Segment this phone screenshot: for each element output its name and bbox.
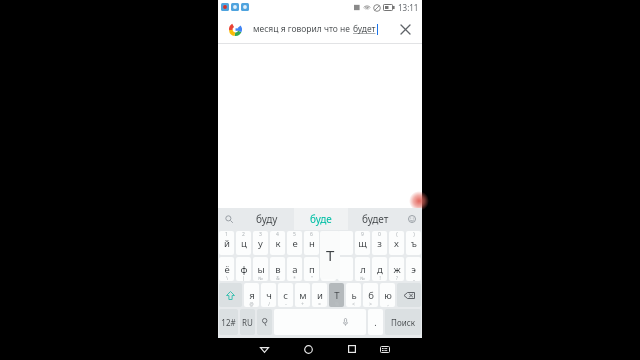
button[interactable]: п [304, 257, 319, 281]
button[interactable]: Т [329, 283, 344, 307]
staticText: ю [384, 289, 392, 302]
staticText: ) [413, 231, 415, 238]
button[interactable]: Space [274, 309, 366, 335]
staticText: RU [242, 317, 253, 328]
button[interactable]: Back [251, 338, 277, 360]
button[interactable]: Hide keyboard [372, 338, 398, 360]
staticText: | [242, 275, 245, 281]
staticText: в [275, 263, 281, 276]
staticText: 12# [221, 317, 236, 328]
staticText: у [258, 237, 263, 250]
button[interactable]: ц [236, 231, 251, 255]
staticText: д [377, 263, 383, 276]
staticText: , [387, 301, 389, 307]
button[interactable]: ь [346, 283, 361, 307]
button[interactable]: Home [295, 338, 321, 360]
staticText: ё [224, 263, 230, 276]
button[interactable] [321, 257, 336, 281]
staticText: _ [413, 275, 415, 281]
staticText: з [377, 237, 382, 250]
staticText: е [292, 237, 298, 250]
button[interactable]: л [355, 257, 370, 281]
staticText: \ [226, 275, 228, 281]
button[interactable]: й [219, 231, 234, 255]
button[interactable]: ы [253, 257, 268, 281]
staticText: 6 [310, 231, 313, 238]
staticText: < [352, 301, 355, 307]
staticText: ч [266, 289, 272, 302]
button[interactable]: ж [389, 257, 404, 281]
button[interactable]: Emoji [402, 208, 422, 230]
button[interactable]: . [368, 309, 383, 335]
staticText: Т [326, 245, 335, 265]
button[interactable]: буде [294, 208, 348, 230]
button[interactable]: б [363, 283, 378, 307]
staticText: > [369, 301, 372, 307]
button[interactable]: Clear query [395, 19, 415, 39]
staticText: 0 [378, 231, 381, 238]
staticText: ? [396, 275, 398, 281]
staticText: б [368, 289, 374, 302]
button[interactable]: с [278, 283, 293, 307]
button[interactable]: Keyboard settings [257, 309, 272, 335]
staticText: месяц я говорил что не [253, 23, 353, 35]
staticText: м [299, 289, 307, 302]
staticText: Поиск [391, 317, 415, 328]
staticText: / [268, 301, 270, 307]
button[interactable]: к [270, 231, 285, 255]
button[interactable]: и [312, 283, 327, 307]
button[interactable]: д [372, 257, 387, 281]
button[interactable]: з [372, 231, 387, 255]
button[interactable]: Backspace [397, 283, 421, 307]
button[interactable]: м [295, 283, 310, 307]
staticText: ц [241, 237, 247, 250]
button[interactable]: будет [348, 208, 402, 230]
button[interactable]: Search [218, 208, 240, 230]
button[interactable]: RU [240, 309, 255, 335]
button[interactable]: Shift [219, 283, 242, 307]
button[interactable]: ё [219, 257, 234, 281]
staticText: х [394, 237, 399, 250]
staticText: 3 [259, 231, 262, 238]
staticText: № [360, 275, 365, 281]
button[interactable]: у [253, 231, 268, 255]
staticText: - [285, 301, 287, 307]
staticText: ! [379, 275, 381, 281]
staticText: с [283, 289, 288, 302]
staticText: ж [393, 263, 401, 276]
button[interactable]: ъ [406, 231, 421, 255]
button[interactable] [321, 231, 336, 255]
staticText: ы [257, 263, 265, 276]
button[interactable]: 12# [219, 309, 238, 335]
staticText: . [374, 316, 377, 328]
button[interactable]: щ [355, 231, 370, 255]
staticText: 13:11 [398, 2, 419, 13]
button[interactable]: ч [261, 283, 276, 307]
staticText: Т [334, 289, 340, 302]
button[interactable]: Поиск [385, 309, 421, 335]
staticText: п [309, 263, 315, 276]
button[interactable]: а [287, 257, 302, 281]
button[interactable]: Recent apps [339, 338, 365, 360]
button[interactable]: я [244, 283, 259, 307]
staticText: л [360, 263, 366, 276]
staticText: ( [396, 231, 398, 238]
staticText: & [276, 275, 280, 281]
staticText: 1 [225, 231, 228, 238]
button[interactable]: н [304, 231, 319, 255]
staticText: и [317, 289, 323, 302]
button[interactable]: ф [236, 257, 251, 281]
staticText: @ [249, 301, 254, 307]
button[interactable]: е [287, 231, 302, 255]
button[interactable]: в [270, 257, 285, 281]
button[interactable]: х [389, 231, 404, 255]
button[interactable]: э [406, 257, 421, 281]
staticText: будет [353, 23, 376, 35]
staticText: 4 [276, 231, 279, 238]
button[interactable]: Google [225, 19, 245, 39]
button[interactable]: ю [380, 283, 395, 307]
staticText: 5 [293, 231, 296, 238]
button[interactable]: буду [240, 208, 294, 230]
